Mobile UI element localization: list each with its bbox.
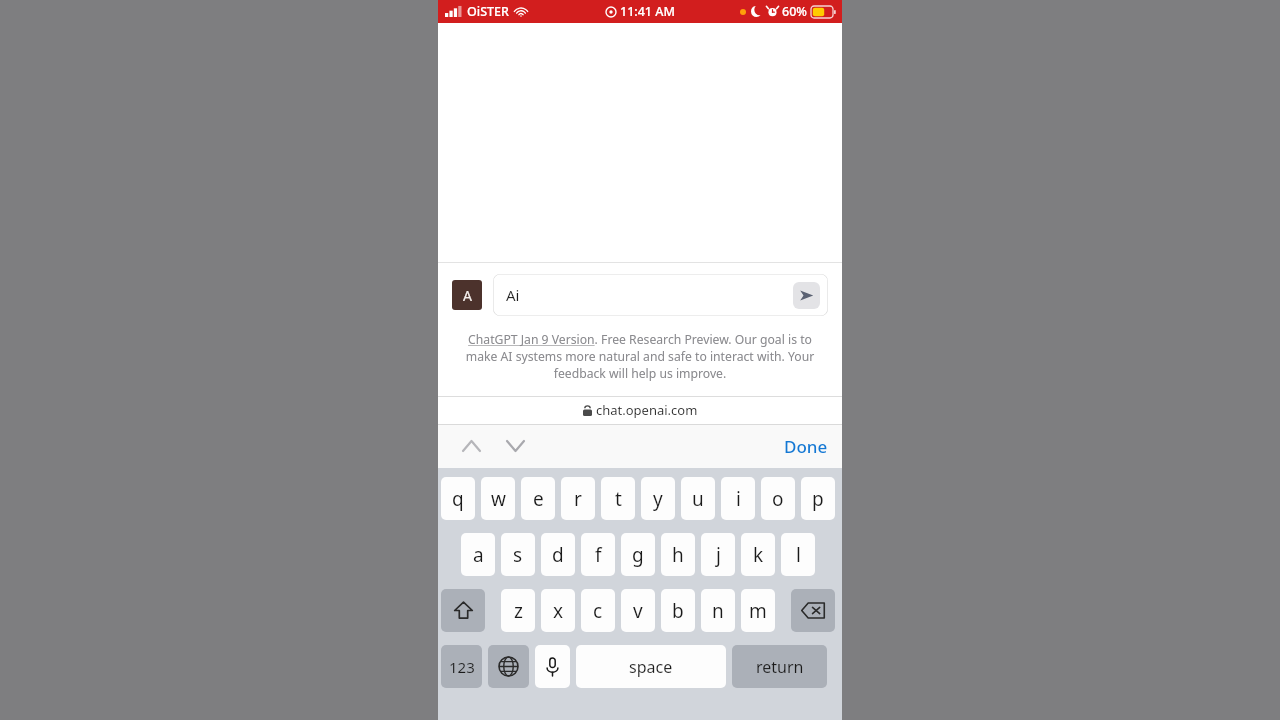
button[interactable]: o <box>761 477 795 520</box>
button[interactable]: b <box>661 589 695 632</box>
staticText: o <box>772 486 784 512</box>
button[interactable]: z <box>501 589 535 632</box>
button[interactable]: u <box>681 477 715 520</box>
staticText: 60% <box>782 3 807 20</box>
button[interactable]: d <box>541 533 575 576</box>
button[interactable]: g <box>621 533 655 576</box>
staticText: chat.openai.com <box>596 401 698 419</box>
button[interactable]: 123 <box>441 645 482 688</box>
staticText: q <box>452 486 464 512</box>
button[interactable]: w <box>481 477 515 520</box>
button[interactable]: x <box>541 589 575 632</box>
staticText: j <box>716 542 721 568</box>
button[interactable]: m <box>741 589 775 632</box>
button[interactable]: Ai <box>493 274 828 316</box>
staticText: space <box>629 656 673 678</box>
staticText: w <box>491 486 506 512</box>
button[interactable]: q <box>441 477 475 520</box>
button[interactable]: k <box>741 533 775 576</box>
button[interactable]: Done <box>784 435 828 458</box>
button[interactable]: n <box>701 589 735 632</box>
button[interactable]: Dictation <box>535 645 570 688</box>
staticText: d <box>552 542 564 568</box>
staticText: p <box>812 486 824 512</box>
button[interactable]: Shift <box>441 589 485 632</box>
staticText: t <box>615 486 622 512</box>
staticText: r <box>574 486 582 512</box>
button[interactable]: return <box>732 645 827 688</box>
button[interactable]: Delete <box>791 589 835 632</box>
staticText: f <box>595 542 602 568</box>
button[interactable]: Previous field <box>454 429 488 463</box>
staticText: s <box>513 542 523 568</box>
staticText: i <box>736 486 741 512</box>
button[interactable]: i <box>721 477 755 520</box>
staticText: m <box>749 598 767 624</box>
button[interactable]: s <box>501 533 535 576</box>
staticText: A <box>463 286 472 305</box>
staticText: l <box>796 542 801 568</box>
button[interactable]: chat.openai.com <box>583 401 698 419</box>
button[interactable]: Send message <box>793 282 820 309</box>
button[interactable]: j <box>701 533 735 576</box>
staticText: return <box>756 656 804 678</box>
button[interactable]: p <box>801 477 835 520</box>
staticText: Ai <box>506 285 520 305</box>
button[interactable]: c <box>581 589 615 632</box>
button[interactable]: v <box>621 589 655 632</box>
button[interactable]: r <box>561 477 595 520</box>
staticText: a <box>473 542 484 568</box>
button[interactable]: f <box>581 533 615 576</box>
staticText: x <box>553 598 564 624</box>
staticText: OiSTER <box>467 3 509 20</box>
button[interactable]: e <box>521 477 555 520</box>
button[interactable]: Switch keyboard <box>488 645 529 688</box>
staticText: c <box>593 598 603 624</box>
button[interactable]: space <box>576 645 726 688</box>
staticText: e <box>533 486 544 512</box>
staticText: b <box>672 598 684 624</box>
staticText: h <box>672 542 684 568</box>
button[interactable]: y <box>641 477 675 520</box>
button[interactable]: Account avatar <box>452 280 482 310</box>
staticText: Done <box>784 435 828 458</box>
staticText: u <box>692 486 704 512</box>
staticText: n <box>712 598 724 624</box>
staticText: y <box>653 486 663 512</box>
staticText: z <box>514 598 523 624</box>
button[interactable]: t <box>601 477 635 520</box>
staticText: g <box>632 542 644 568</box>
button[interactable]: l <box>781 533 815 576</box>
button[interactable]: a <box>461 533 495 576</box>
staticText: k <box>753 542 764 568</box>
staticText: v <box>633 598 643 624</box>
button[interactable]: h <box>661 533 695 576</box>
staticText: 11:41 AM <box>620 3 675 20</box>
staticText: 123 <box>449 657 475 677</box>
button[interactable]: Next field <box>498 429 532 463</box>
staticText: ChatGPT Jan 9 Version. Free Research Pre… <box>454 331 826 382</box>
